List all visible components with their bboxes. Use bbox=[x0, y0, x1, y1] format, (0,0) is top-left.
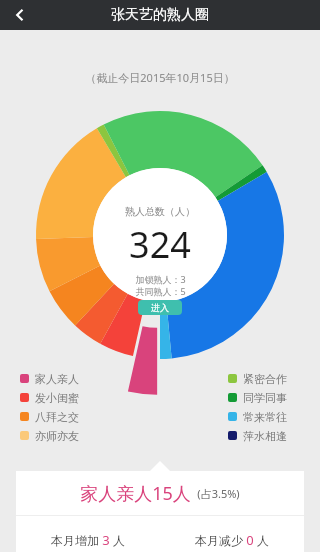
staticText: 人 bbox=[257, 533, 269, 548]
staticText: 家人亲人 bbox=[35, 372, 79, 386]
staticText: (占3.5%) bbox=[197, 486, 240, 501]
staticText: 发小闺蜜 bbox=[35, 391, 79, 405]
button[interactable]: 亦师亦友 bbox=[20, 426, 79, 445]
staticText: 家人亲人15人 bbox=[80, 481, 191, 506]
staticText: 0 bbox=[246, 531, 254, 549]
staticText: （截止今日2015年10月15日） bbox=[85, 70, 235, 85]
button[interactable]: 进入 bbox=[138, 300, 182, 315]
staticText: 324 bbox=[129, 220, 191, 269]
staticText: 加锁熟人：3 bbox=[135, 273, 186, 285]
button[interactable]: 同学同事 bbox=[228, 388, 287, 407]
staticText: 萍水相逢 bbox=[243, 429, 287, 443]
staticText: 人 bbox=[113, 533, 125, 548]
staticText: 常来常往 bbox=[243, 410, 287, 424]
staticText: 亦师亦友 bbox=[35, 429, 79, 443]
button[interactable]: 家人亲人 bbox=[20, 369, 79, 388]
button[interactable]: 常来常往 bbox=[228, 407, 287, 426]
staticText: 本月减少 bbox=[195, 533, 243, 548]
button[interactable]: 八拜之交 bbox=[20, 407, 79, 426]
button[interactable]: Back bbox=[0, 0, 40, 30]
staticText: 张天艺的熟人圈 bbox=[111, 6, 209, 24]
staticText: 熟人总数（人） bbox=[125, 205, 195, 218]
staticText: 进入 bbox=[151, 302, 169, 313]
staticText: 共同熟人：5 bbox=[135, 285, 186, 297]
staticText: 八拜之交 bbox=[35, 410, 79, 424]
staticText: 紧密合作 bbox=[243, 372, 287, 386]
staticText: 同学同事 bbox=[243, 391, 287, 405]
staticText: 本月增加 bbox=[51, 533, 99, 548]
button[interactable]: 家人亲人15人 bbox=[16, 471, 304, 552]
button[interactable]: 萍水相逢 bbox=[228, 426, 287, 445]
staticText: 3 bbox=[102, 531, 110, 549]
button[interactable]: 发小闺蜜 bbox=[20, 388, 79, 407]
button[interactable]: 紧密合作 bbox=[228, 369, 287, 388]
